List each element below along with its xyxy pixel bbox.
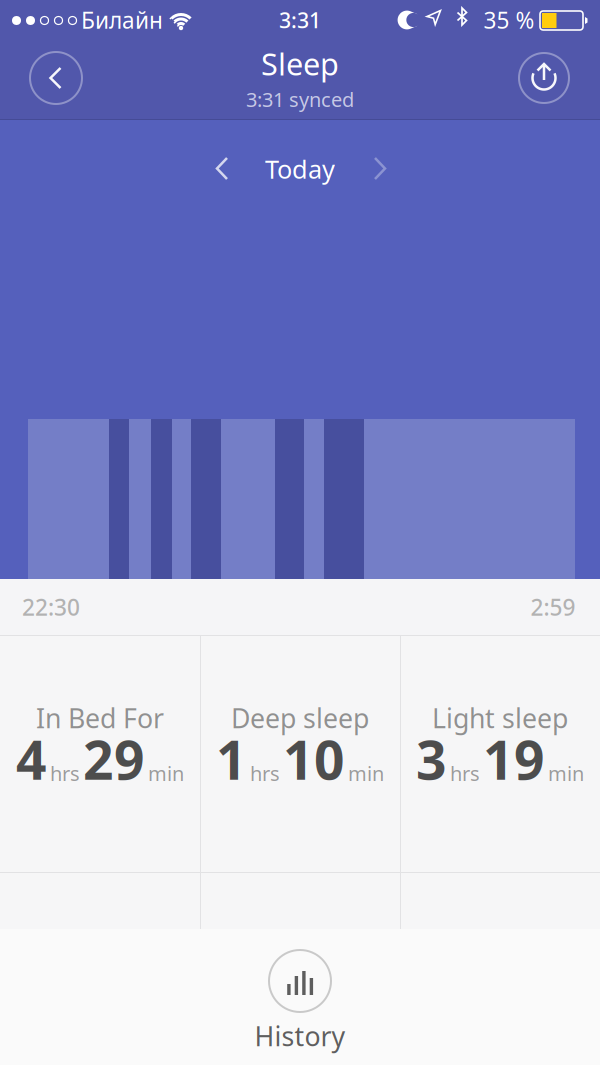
- staticText: 3:31: [279, 6, 321, 34]
- staticText: 35 %: [483, 5, 534, 35]
- staticText: hrs: [450, 760, 480, 786]
- button[interactable]: [361, 154, 391, 184]
- staticText: 29: [83, 724, 145, 794]
- staticText: hrs: [50, 760, 80, 786]
- staticText: History: [254, 1018, 345, 1054]
- button[interactable]: [518, 52, 570, 104]
- staticText: 10: [283, 724, 345, 794]
- staticText: 2:59: [530, 592, 575, 622]
- button[interactable]: [211, 154, 241, 184]
- staticText: 19: [483, 724, 545, 794]
- staticText: Deep sleep: [231, 700, 369, 736]
- staticText: 1: [216, 724, 247, 794]
- staticText: 22:30: [22, 592, 80, 622]
- staticText: Sleep: [261, 43, 339, 84]
- staticText: 3:31 synced: [246, 86, 354, 113]
- button[interactable]: Today: [265, 152, 335, 186]
- button[interactable]: History: [230, 929, 370, 1065]
- staticText: min: [548, 760, 584, 786]
- staticText: hrs: [250, 760, 280, 786]
- staticText: 3: [416, 724, 447, 794]
- staticText: 4: [16, 724, 47, 794]
- staticText: min: [348, 760, 384, 786]
- staticText: min: [148, 760, 184, 786]
- staticText: In Bed For: [36, 700, 164, 736]
- staticText: Билайн: [81, 5, 163, 35]
- button[interactable]: [29, 51, 83, 105]
- staticText: Light sleep: [432, 700, 568, 736]
- staticText: Today: [265, 152, 335, 186]
